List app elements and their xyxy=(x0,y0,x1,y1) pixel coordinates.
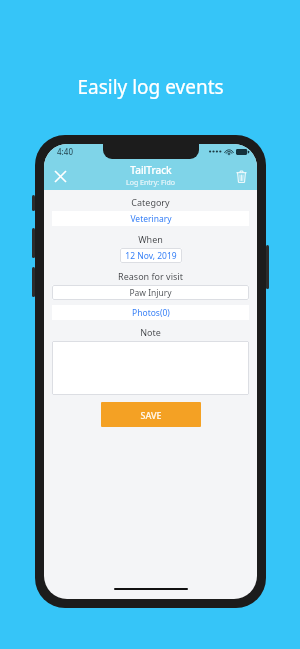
button[interactable]: Close xyxy=(49,165,71,187)
button[interactable]: Photos(0) xyxy=(52,305,249,320)
button[interactable]: 12 Nov, 2019 xyxy=(120,248,182,263)
staticText: When xyxy=(138,233,163,245)
button[interactable]: Paw Injury xyxy=(52,285,249,300)
button[interactable] xyxy=(52,341,249,395)
staticText: TailTrack xyxy=(130,163,172,177)
staticText: Category xyxy=(131,196,170,208)
staticText: Paw Injury xyxy=(129,287,172,299)
staticText: Easily log events xyxy=(77,74,224,100)
staticText: SAVE xyxy=(140,409,162,421)
staticText: Log Entry: Fido xyxy=(126,178,175,188)
staticText: Note xyxy=(140,326,161,338)
button[interactable]: SAVE xyxy=(101,402,201,427)
staticText: Reason for visit xyxy=(118,270,183,282)
staticText: Photos(0) xyxy=(132,307,170,319)
staticText: Veterinary xyxy=(130,213,172,225)
staticText: 12 Nov, 2019 xyxy=(125,250,177,262)
button[interactable]: Delete xyxy=(230,165,252,187)
staticText: 4:40 xyxy=(57,146,73,157)
button[interactable]: Veterinary xyxy=(52,211,249,226)
